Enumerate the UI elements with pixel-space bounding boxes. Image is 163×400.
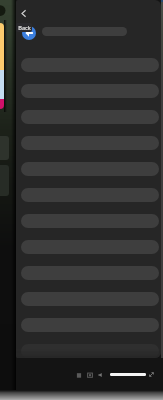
button[interactable]: Back [16, 4, 32, 22]
button[interactable] [21, 58, 159, 72]
button[interactable] [21, 162, 159, 176]
button[interactable]: Back gesture [22, 26, 36, 40]
staticText: Back [18, 24, 31, 32]
button[interactable]: Fullscreen [148, 371, 154, 377]
button[interactable] [21, 292, 159, 306]
button[interactable] [21, 110, 159, 124]
button[interactable] [21, 344, 159, 358]
button[interactable] [21, 318, 159, 332]
button[interactable] [21, 240, 159, 254]
button[interactable] [21, 266, 159, 280]
button[interactable]: Volume slider [110, 373, 146, 376]
button[interactable] [21, 84, 159, 98]
button[interactable]: Volume [95, 369, 106, 380]
button[interactable]: Capture [84, 369, 95, 380]
button[interactable] [21, 214, 159, 228]
button[interactable]: Delete [73, 369, 84, 380]
button[interactable] [21, 188, 159, 202]
button[interactable] [42, 27, 127, 36]
button[interactable]: Back [16, 23, 32, 32]
button[interactable] [21, 136, 159, 150]
